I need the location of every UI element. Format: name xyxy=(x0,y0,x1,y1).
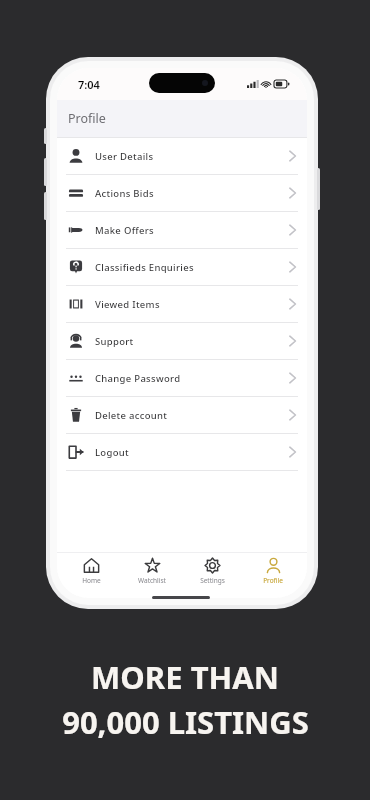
staticText: Home xyxy=(82,576,101,585)
staticText: Delete account xyxy=(95,409,168,422)
staticText: User Details xyxy=(95,150,154,163)
staticText: Classifieds Enquiries xyxy=(95,261,194,274)
button[interactable]: User Details xyxy=(57,138,307,174)
button[interactable]: Make Offers xyxy=(57,212,307,248)
staticText: Logout xyxy=(95,446,129,459)
button[interactable]: Logout xyxy=(57,434,307,470)
staticText: Watchlist xyxy=(138,576,166,585)
staticText: MORE THAN xyxy=(91,656,279,698)
button[interactable]: Profile xyxy=(247,557,299,598)
button[interactable]: Home xyxy=(65,557,117,598)
staticText: 7:04 xyxy=(78,77,100,92)
button[interactable]: Classifieds Enquiries xyxy=(57,249,307,285)
button[interactable]: Settings xyxy=(186,557,238,598)
staticText: Support xyxy=(95,335,134,348)
staticText: 90,000 LISTINGS xyxy=(62,701,309,743)
staticText: Viewed Items xyxy=(95,298,160,311)
staticText: Profile xyxy=(68,110,106,127)
staticText: Profile xyxy=(263,576,283,585)
button[interactable]: Actions Bids xyxy=(57,175,307,211)
button[interactable]: Support xyxy=(57,323,307,359)
button[interactable]: Watchlist xyxy=(126,557,178,598)
staticText: Make Offers xyxy=(95,224,155,237)
staticText: Change Password xyxy=(95,372,181,385)
button[interactable]: Delete account xyxy=(57,397,307,433)
staticText: Actions Bids xyxy=(95,187,154,200)
button[interactable]: Viewed Items xyxy=(57,286,307,322)
button[interactable]: Change Password xyxy=(57,360,307,396)
staticText: Settings xyxy=(200,576,225,585)
